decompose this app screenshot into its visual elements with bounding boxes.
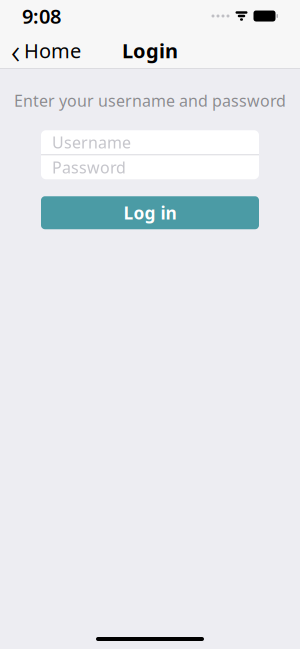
staticText: Home xyxy=(24,37,81,64)
staticText: ‹ xyxy=(11,27,20,73)
staticText: Password xyxy=(52,157,126,178)
staticText: Log in xyxy=(123,201,176,224)
button[interactable]: Log in xyxy=(41,196,259,229)
staticText: 9:08 xyxy=(22,3,61,29)
button[interactable]: ‹ xyxy=(0,21,81,79)
staticText: Username xyxy=(52,132,131,153)
staticText: Enter your username and password xyxy=(14,90,286,111)
staticText: Login xyxy=(122,37,178,64)
